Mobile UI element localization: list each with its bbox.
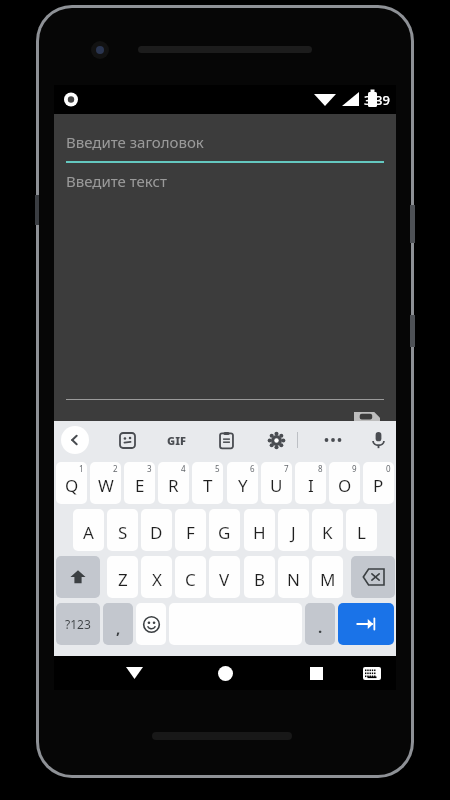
button[interactable]: Switch keyboard (348, 656, 396, 690)
button[interactable]: K (312, 509, 343, 551)
button[interactable]: V (209, 556, 240, 598)
button[interactable]: U (261, 462, 292, 504)
button[interactable]: O (329, 462, 360, 504)
staticText: W (98, 474, 114, 497)
staticText: V (219, 568, 230, 591)
staticText: 4 (181, 463, 186, 474)
button[interactable]: Emoji (136, 603, 166, 645)
button[interactable]: X (141, 556, 172, 598)
button[interactable]: P (363, 462, 394, 504)
staticText: 0 (386, 463, 391, 474)
button[interactable]: T (192, 462, 223, 504)
staticText: T (203, 474, 213, 497)
button[interactable]: Back (108, 656, 160, 690)
button[interactable]: Q (56, 462, 87, 504)
staticText: J (291, 521, 296, 544)
staticText: O (338, 474, 352, 497)
button[interactable]: N (278, 556, 309, 598)
button[interactable]: Save (344, 404, 390, 446)
button[interactable]: Z (107, 556, 138, 598)
staticText: B (254, 568, 266, 591)
staticText: K (322, 521, 333, 544)
staticText: I (308, 474, 314, 497)
button[interactable]: M (312, 556, 343, 598)
staticText: M (320, 568, 336, 591)
staticText: S (118, 521, 128, 544)
staticText: Введите заголовок (66, 132, 204, 152)
button[interactable]: E (124, 462, 155, 504)
button[interactable]: Home (199, 656, 251, 690)
button[interactable]: Shift (56, 556, 100, 598)
staticText: D (150, 521, 163, 544)
staticText: A (83, 521, 94, 544)
button[interactable]: . (305, 603, 335, 645)
button[interactable]: Back (61, 426, 89, 454)
button[interactable]: D (141, 509, 172, 551)
button[interactable]: Введите текст (66, 171, 384, 396)
staticText: GIF (167, 433, 186, 448)
button[interactable]: L (346, 509, 377, 551)
button[interactable]: Voice input (361, 426, 395, 454)
button[interactable]: More options (316, 426, 350, 454)
button[interactable]: J (278, 509, 309, 551)
staticText: 7 (284, 463, 289, 474)
button[interactable]: Clipboard (209, 426, 243, 454)
staticText: Введите текст (66, 171, 167, 191)
staticText: 1 (79, 463, 84, 474)
staticText: H (253, 521, 266, 544)
staticText: Y (238, 474, 248, 497)
button[interactable]: B (244, 556, 275, 598)
staticText: , (116, 618, 121, 638)
button[interactable]: Введите заголовок (66, 122, 384, 162)
staticText: F (186, 521, 195, 544)
button[interactable]: Enter (338, 603, 394, 645)
button[interactable]: Settings (259, 426, 293, 454)
staticText: C (185, 568, 196, 591)
staticText: . (318, 617, 323, 637)
button[interactable]: H (244, 509, 275, 551)
staticText: 8 (318, 463, 323, 474)
button[interactable]: F (175, 509, 206, 551)
button[interactable]: ?123 (56, 603, 100, 645)
staticText: P (373, 474, 384, 497)
staticText: X (152, 568, 162, 591)
staticText: 6 (250, 463, 255, 474)
button[interactable]: C (175, 556, 206, 598)
button[interactable]: Stickers (110, 426, 144, 454)
staticText: N (287, 568, 300, 591)
button[interactable]: W (90, 462, 121, 504)
button[interactable]: S (107, 509, 138, 551)
staticText: R (168, 474, 179, 497)
staticText: Q (65, 474, 79, 497)
staticText: E (135, 474, 145, 497)
staticText: 9 (352, 463, 357, 474)
staticText: U (270, 474, 283, 497)
button[interactable]: Recents (290, 656, 342, 690)
staticText: ?123 (65, 616, 91, 632)
button[interactable]: G (209, 509, 240, 551)
staticText: L (357, 521, 366, 544)
staticText: Z (118, 568, 128, 591)
button[interactable]: A (73, 509, 104, 551)
button[interactable]: GIF (159, 426, 193, 454)
staticText: 3:39 (364, 91, 390, 109)
button[interactable]: , (103, 603, 133, 645)
staticText: 3 (147, 463, 152, 474)
staticText: 5 (215, 463, 220, 474)
button[interactable]: Y (227, 462, 258, 504)
button[interactable]: I (295, 462, 326, 504)
button[interactable]: Backspace (351, 556, 395, 598)
button[interactable]: R (158, 462, 189, 504)
staticText: G (218, 521, 231, 544)
staticText: 2 (113, 463, 118, 474)
